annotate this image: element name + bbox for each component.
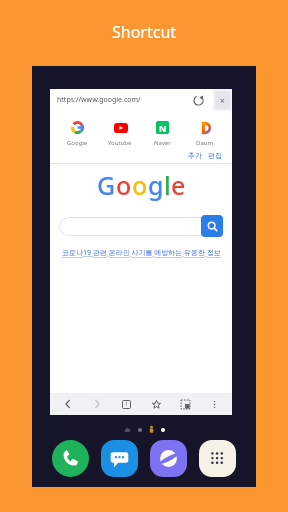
- button[interactable]: Phone: [52, 440, 89, 477]
- button[interactable]: Forward: [86, 393, 108, 415]
- button[interactable]: 추가: [185, 151, 205, 160]
- staticText: N: [159, 122, 167, 134]
- staticText: e: [171, 168, 186, 202]
- button[interactable]: Reload: [187, 89, 209, 111]
- button[interactable]: Close: [215, 91, 230, 109]
- staticText: G: [97, 168, 116, 202]
- button[interactable]: Bookmark: [145, 393, 167, 415]
- button[interactable]: Youtube: [100, 118, 140, 148]
- staticText: ×: [220, 95, 225, 106]
- staticText: 1: [125, 401, 128, 408]
- staticText: Naver: [154, 139, 171, 147]
- button[interactable]: N: [142, 118, 182, 148]
- staticText: l: [164, 168, 171, 202]
- button[interactable]: More options: [203, 393, 225, 415]
- button[interactable]: Tabs: [115, 393, 137, 415]
- button[interactable]: 코로나19 관련 온라인 사기를 예방하는 유용한 정보: [62, 248, 221, 258]
- staticText: Daum: [196, 139, 214, 147]
- staticText: Youtube: [108, 139, 132, 147]
- staticText: g: [148, 168, 164, 202]
- button[interactable]: Capture: [174, 393, 196, 415]
- button[interactable]: Internet: [150, 440, 187, 477]
- button[interactable]: Messages: [101, 440, 138, 477]
- button[interactable]: 편집: [205, 151, 225, 160]
- button[interactable]: Search field: [59, 217, 223, 236]
- button[interactable]: Apps: [199, 440, 236, 477]
- staticText: o: [116, 168, 132, 202]
- button[interactable]: Search: [201, 215, 223, 237]
- staticText: Google: [67, 139, 88, 147]
- button[interactable]: Daum: [185, 118, 225, 148]
- staticText: o: [132, 168, 148, 202]
- staticText: Shortcut: [0, 21, 288, 43]
- staticText: https://www.google.com/: [57, 95, 141, 105]
- button[interactable]: Google: [57, 118, 97, 148]
- button[interactable]: https://www.google.com/: [50, 89, 213, 111]
- button[interactable]: Back: [57, 393, 79, 415]
